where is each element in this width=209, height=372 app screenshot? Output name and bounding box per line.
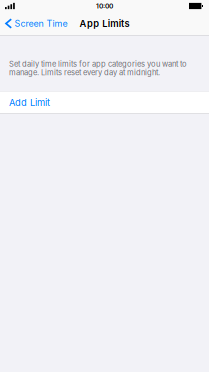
- button[interactable]: Screen Time: [0, 12, 73, 35]
- staticText: App Limits: [79, 18, 130, 29]
- staticText: Add Limit: [9, 97, 50, 108]
- staticText: 10:00: [96, 2, 113, 10]
- staticText: Screen Time: [15, 18, 68, 29]
- button[interactable]: Add Limit: [0, 91, 209, 113]
- staticText: Set daily time limits for app categories…: [9, 59, 187, 77]
